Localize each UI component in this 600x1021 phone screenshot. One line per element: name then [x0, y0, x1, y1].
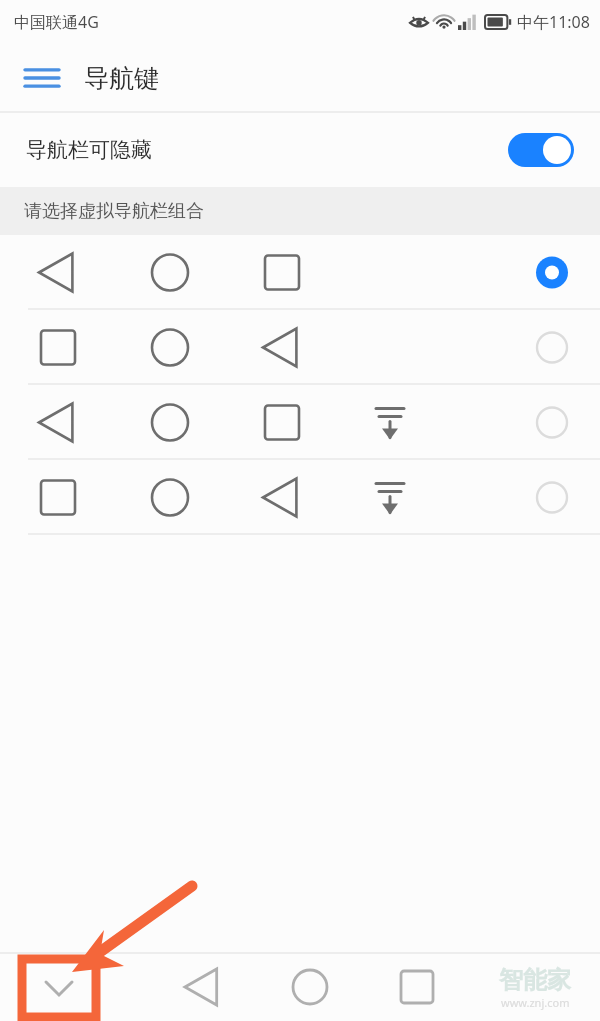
- button[interactable]: [0, 385, 600, 460]
- button[interactable]: 导航栏可隐藏: [0, 112, 600, 187]
- staticText: 请选择虚拟导航栏组合: [24, 200, 204, 223]
- staticText: 导航栏可隐藏: [26, 137, 152, 163]
- button[interactable]: [0, 235, 600, 310]
- button[interactable]: Hide navigation bar: [0, 953, 150, 1021]
- button[interactable]: Recents: [363, 953, 470, 1021]
- button[interactable]: [0, 310, 600, 385]
- staticText: www.znj.com: [501, 995, 570, 1010]
- button[interactable]: Home: [256, 953, 363, 1021]
- staticText: 智能家: [499, 965, 571, 995]
- staticText: 中午11:08: [517, 11, 590, 33]
- staticText: 导航键: [84, 63, 159, 94]
- staticText: 中国联通4G: [14, 11, 99, 33]
- button[interactable]: Back: [150, 953, 256, 1021]
- button[interactable]: [0, 460, 600, 535]
- button[interactable]: Menu: [14, 50, 70, 106]
